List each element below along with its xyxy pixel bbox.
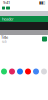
- staticText: sub: [2, 40, 7, 43]
- staticText: 9:41: [3, 0, 10, 5]
- staticText: header: [2, 16, 14, 22]
- staticText: Title: [1, 35, 8, 40]
- staticText: ▮▮▯: [39, 0, 45, 5]
